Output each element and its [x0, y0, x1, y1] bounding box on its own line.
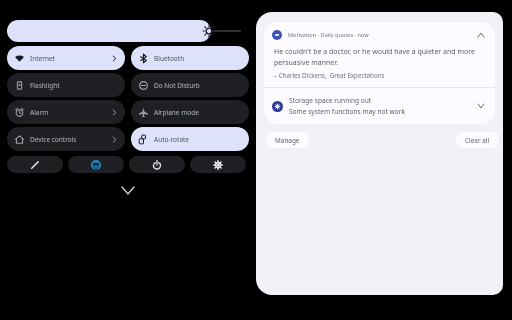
button[interactable]: Collapse notification [475, 29, 487, 41]
staticText: Do Not Disturb [154, 81, 241, 90]
staticText: Flashlight [30, 81, 117, 90]
staticText: Internet [30, 54, 112, 63]
button[interactable]: Manage [266, 132, 309, 148]
button[interactable]: Settings [190, 156, 246, 173]
button[interactable]: Flashlight [7, 73, 125, 97]
staticText: Manage [275, 136, 300, 145]
staticText: Storage space running out [289, 96, 372, 105]
staticText: He couldn't be a doctor, or he would hav… [274, 47, 487, 67]
staticText: Motivation · Daily quotes · now [288, 31, 369, 39]
button[interactable]: Do Not Disturb [131, 73, 249, 97]
staticText: Bluetooth [154, 54, 241, 63]
staticText: Some system functions may not work [289, 107, 405, 116]
staticText: Airplane mode [154, 108, 241, 117]
button[interactable]: Auto-rotate [131, 127, 249, 151]
staticText: Device controls [30, 135, 112, 144]
staticText: – Charles Dickens, Great Expectations [274, 71, 385, 79]
button[interactable]: Storage space running out [264, 88, 495, 124]
button[interactable]: Power [129, 156, 185, 173]
button[interactable]: Motivation · Daily quotes · now [264, 22, 495, 87]
button[interactable]: Internet [7, 46, 125, 70]
button[interactable]: Device controls [7, 127, 125, 151]
button[interactable]: Clear all [456, 132, 499, 148]
staticText: Auto-rotate [154, 135, 241, 144]
button[interactable]: Bluetooth [131, 46, 249, 70]
button[interactable]: Expand notification [475, 100, 487, 112]
button[interactable]: Edit tiles [7, 156, 63, 173]
button[interactable]: Brightness [7, 20, 241, 42]
button[interactable]: User [68, 156, 124, 173]
button[interactable]: Alarm [7, 100, 125, 124]
button[interactable]: Collapse [118, 183, 138, 197]
button[interactable]: Airplane mode [131, 100, 249, 124]
staticText: Alarm [30, 108, 112, 117]
staticText: Clear all [465, 136, 490, 145]
